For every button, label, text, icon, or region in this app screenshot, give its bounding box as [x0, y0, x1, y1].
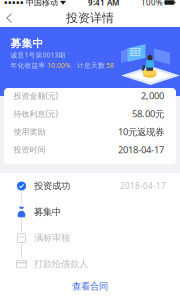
staticText: 投资时间	[13, 145, 45, 155]
staticText: 58.00元	[132, 108, 164, 120]
staticText: 打款给借款人	[34, 258, 88, 270]
staticText: 查看合同	[72, 281, 108, 292]
staticText: 中国移动	[24, 0, 60, 7]
staticText: 待收利息(元)	[13, 108, 57, 119]
staticText: 使用奖励	[13, 127, 45, 137]
button[interactable]: 返回	[0, 9, 21, 27]
staticText: 投资金额(元)	[13, 90, 57, 101]
staticText: 10.00%	[47, 61, 71, 70]
staticText: 2018-04-17	[118, 144, 164, 156]
staticText: 2018-04-17	[120, 181, 166, 191]
staticText: •••••	[4, 0, 24, 9]
staticText: 投资成功	[34, 180, 70, 192]
staticText: 2,000	[141, 90, 164, 102]
staticText: 投资详情	[66, 11, 114, 25]
staticText: 募集中	[10, 37, 43, 50]
staticText: 募集中	[34, 206, 61, 218]
staticText: 满标审核	[34, 232, 70, 244]
staticText: 诚意1号第0013期	[10, 51, 65, 59]
staticText: 58	[106, 61, 114, 70]
staticText: 年化收益率	[10, 61, 45, 70]
staticText: 9:41 AM	[88, 0, 119, 8]
staticText: 计息天数	[77, 61, 105, 70]
staticText: 10元返现券	[118, 126, 164, 138]
staticText: 100%	[141, 0, 163, 8]
button[interactable]: 查看合同	[0, 277, 180, 296]
